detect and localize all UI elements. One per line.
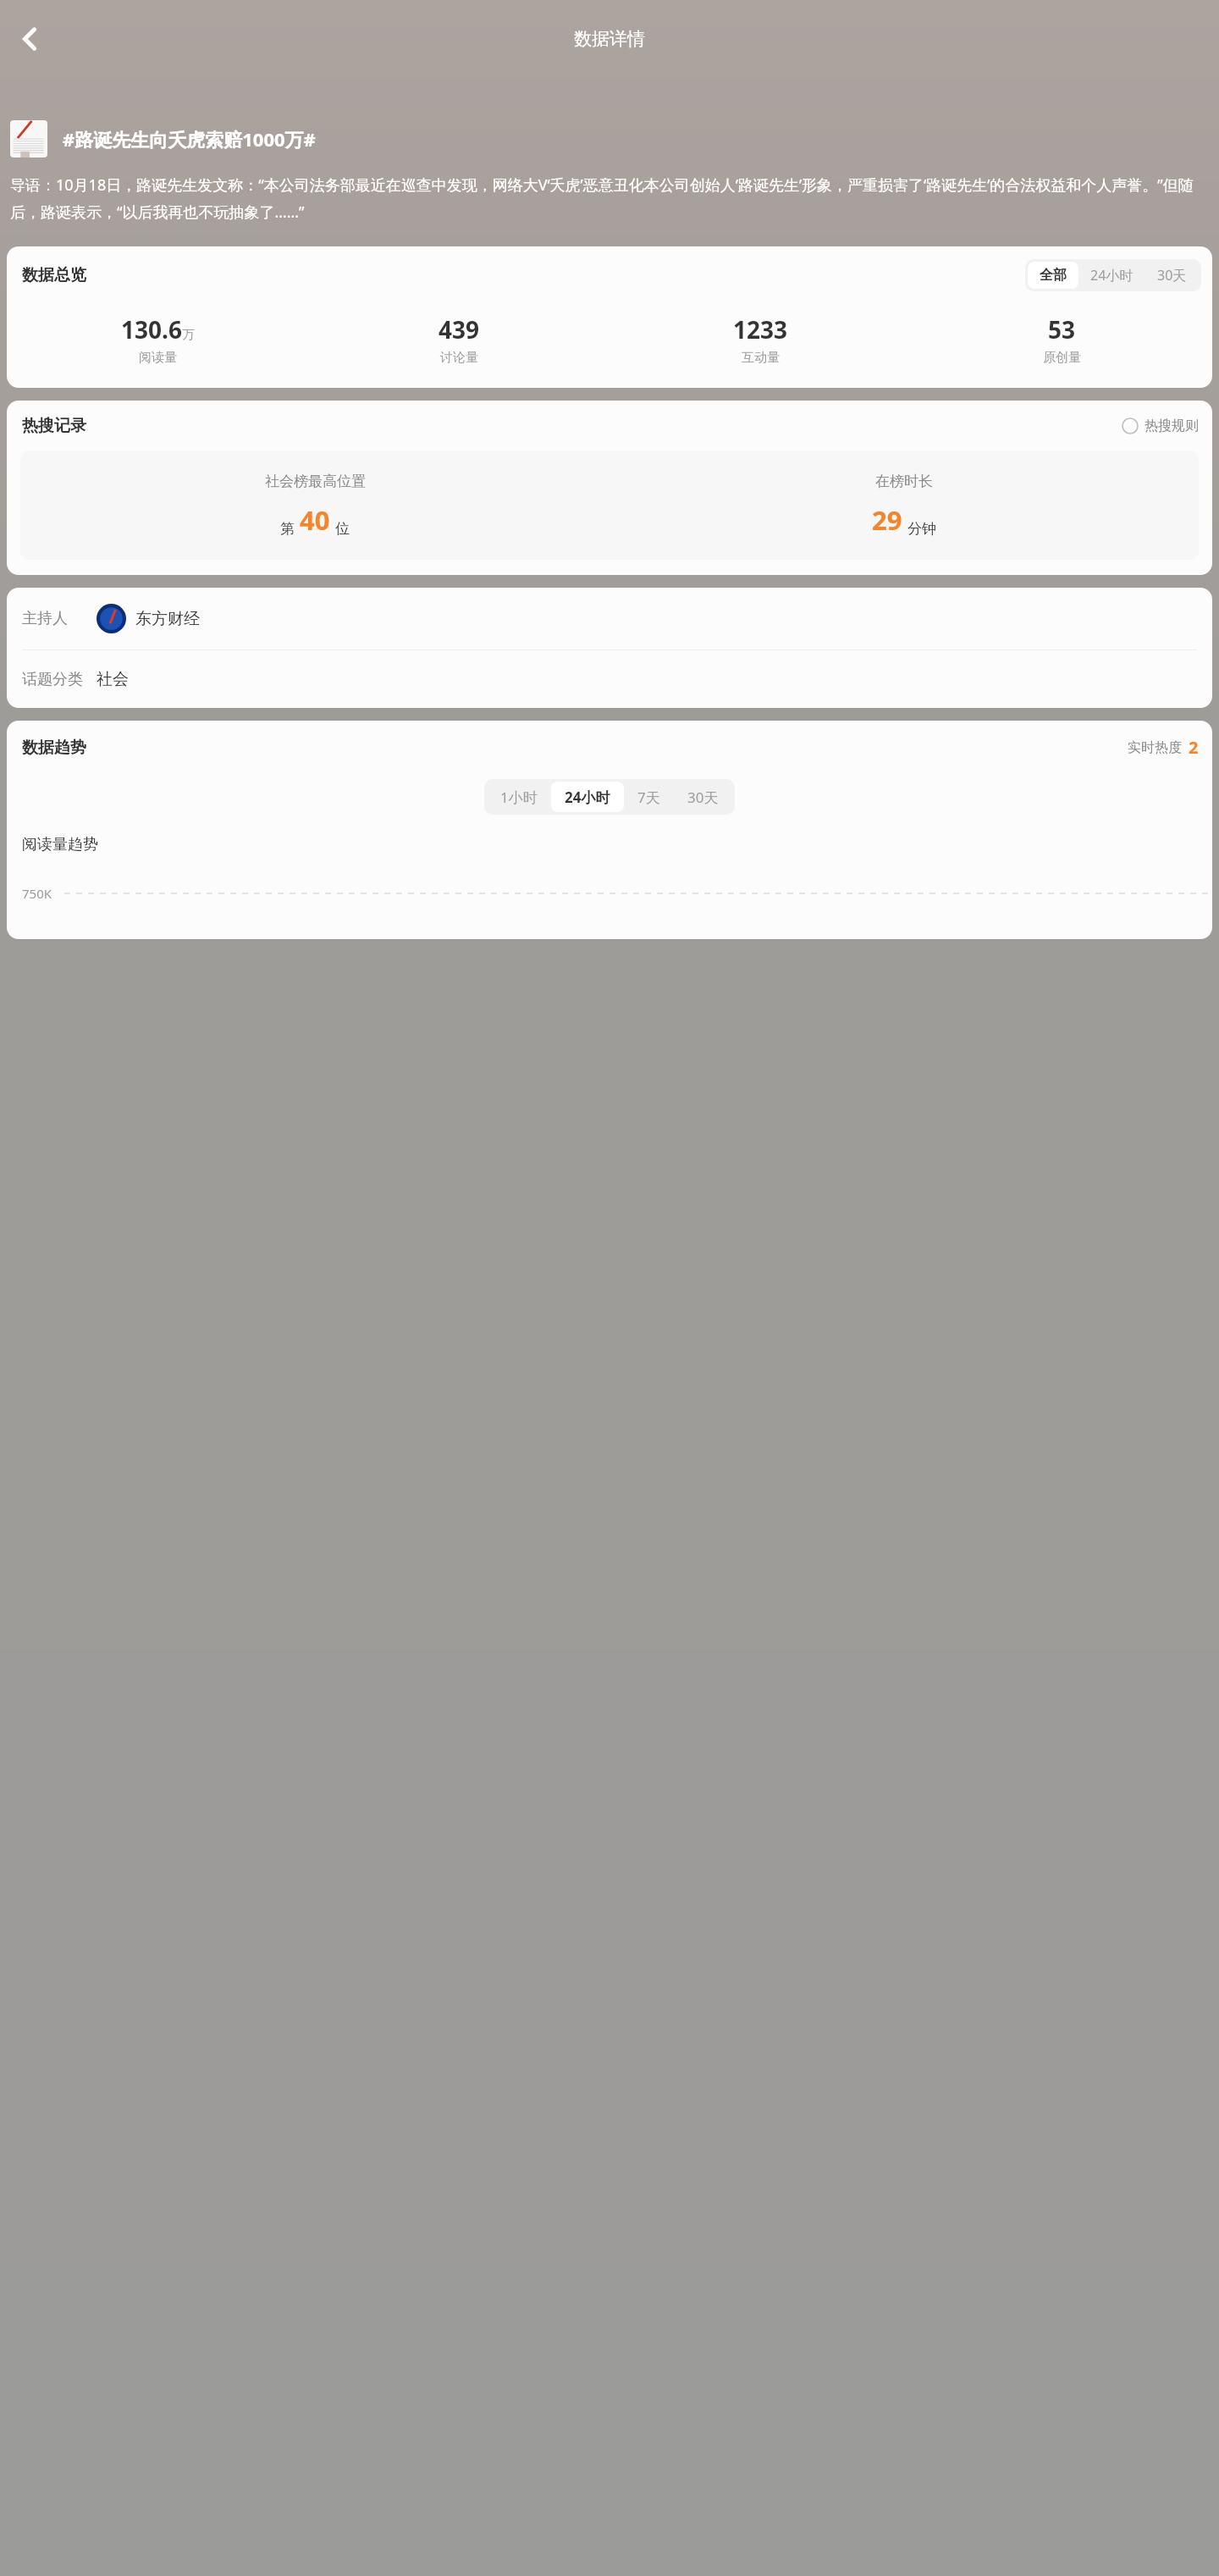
- button[interactable]: 1小时: [487, 782, 551, 812]
- staticText: 社会: [97, 669, 129, 689]
- button[interactable]: 30天: [674, 782, 732, 812]
- staticText: 热搜规则: [1145, 417, 1199, 434]
- button[interactable]: 全部: [1028, 262, 1078, 289]
- staticText: 阅读量趋势: [22, 835, 98, 854]
- staticText: 讨论量: [440, 350, 478, 366]
- staticText: 导语：10月18日，路诞先生发文称：“本公司法务部最近在巡查中发现，网络大V‘夭…: [10, 174, 1209, 223]
- staticText: 40: [300, 502, 330, 538]
- staticText: 数据总览: [22, 265, 86, 285]
- staticText: 全部: [1040, 267, 1067, 284]
- staticText: 位: [335, 520, 350, 538]
- staticText: 439: [439, 313, 480, 345]
- staticText: 130.6万: [121, 313, 195, 345]
- staticText: 数据详情: [574, 28, 645, 50]
- button[interactable]: 7天: [624, 782, 674, 812]
- staticText: 阅读量: [139, 350, 177, 366]
- staticText: 主持人: [22, 609, 68, 628]
- button[interactable]: Back: [5, 14, 54, 64]
- staticText: 1小时: [500, 788, 538, 807]
- button[interactable]: 30天: [1145, 262, 1199, 289]
- staticText: 热搜记录: [22, 416, 86, 436]
- staticText: 在榜时长: [875, 473, 933, 490]
- staticText: 53: [1048, 313, 1076, 345]
- button[interactable]: 主持人: [7, 588, 1212, 650]
- staticText: 24小时: [1090, 266, 1134, 285]
- staticText: 24小时: [565, 788, 610, 807]
- staticText: #路诞先生向夭虎索赔1000万#: [63, 126, 316, 152]
- staticText: 互动量: [742, 350, 780, 366]
- staticText: 分钟: [907, 520, 936, 538]
- button[interactable]: 话题分类: [7, 650, 1212, 708]
- staticText: 30天: [1157, 266, 1187, 285]
- button[interactable]: 24小时: [1078, 262, 1145, 289]
- staticText: 30天: [687, 788, 719, 807]
- staticText: 实时热度: [1128, 739, 1182, 756]
- staticText: 数据趋势: [22, 738, 86, 758]
- staticText: 第: [280, 520, 295, 538]
- staticText: 750K: [22, 885, 52, 902]
- staticText: 1233: [733, 313, 788, 345]
- staticText: 原创量: [1043, 350, 1081, 366]
- staticText: 东方财经: [135, 609, 200, 629]
- staticText: 2: [1189, 736, 1199, 759]
- button[interactable]: 热搜规则: [1122, 417, 1199, 434]
- staticText: 7天: [637, 788, 660, 807]
- staticText: 社会榜最高位置: [265, 473, 366, 490]
- staticText: 话题分类: [22, 670, 83, 689]
- staticText: 29: [872, 502, 902, 538]
- button[interactable]: 24小时: [551, 782, 624, 812]
